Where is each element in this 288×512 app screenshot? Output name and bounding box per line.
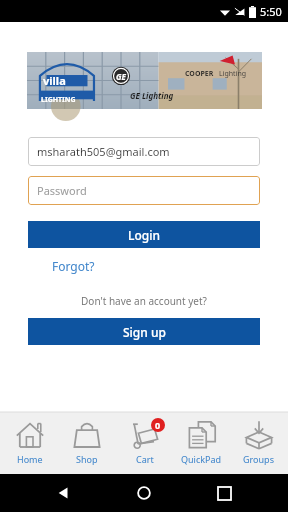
- button[interactable]: Forgot?: [52, 256, 95, 276]
- button[interactable]: msharath505@gmail.com: [28, 137, 260, 166]
- staticText: GE: [116, 71, 126, 82]
- other: QuickPad: [187, 420, 217, 450]
- staticText: Forgot?: [52, 258, 95, 274]
- staticText: COOPER: [185, 69, 214, 79]
- button[interactable]: QuickPad: [174, 412, 229, 474]
- staticText: Shop: [76, 453, 98, 465]
- button[interactable]: Shop: [59, 412, 114, 474]
- staticText: msharath505@gmail.com: [37, 144, 170, 159]
- button[interactable]: Recent apps: [208, 477, 240, 509]
- staticText: Login: [128, 227, 160, 243]
- button[interactable]: Home: [128, 477, 160, 509]
- button[interactable]: Cart: [117, 412, 172, 474]
- other: Home: [15, 420, 45, 450]
- staticText: QuickPad: [181, 453, 222, 465]
- staticText: Password: [37, 183, 87, 198]
- button[interactable]: Groups: [231, 412, 286, 474]
- staticText: Don't have an account yet?: [0, 294, 288, 308]
- button[interactable]: Login: [28, 221, 260, 248]
- other: Shop: [72, 420, 102, 450]
- button[interactable]: Sign up: [28, 318, 260, 345]
- staticText: Home: [17, 453, 43, 465]
- staticText: LIGHTING: [41, 95, 76, 105]
- staticText: GE Lighting: [130, 90, 174, 101]
- staticText: Lighting: [219, 69, 247, 79]
- button[interactable]: Home: [2, 412, 57, 474]
- button[interactable]: Password: [28, 176, 260, 205]
- button[interactable]: Back: [48, 477, 80, 509]
- other: Groups: [244, 420, 274, 450]
- staticText: Sign up: [123, 324, 166, 340]
- staticText: Groups: [243, 453, 274, 465]
- staticText: 5:50: [260, 4, 282, 19]
- staticText: 0: [155, 419, 161, 431]
- staticText: villa: [43, 73, 66, 88]
- other: Cart: [130, 420, 160, 450]
- staticText: Cart: [136, 453, 154, 465]
